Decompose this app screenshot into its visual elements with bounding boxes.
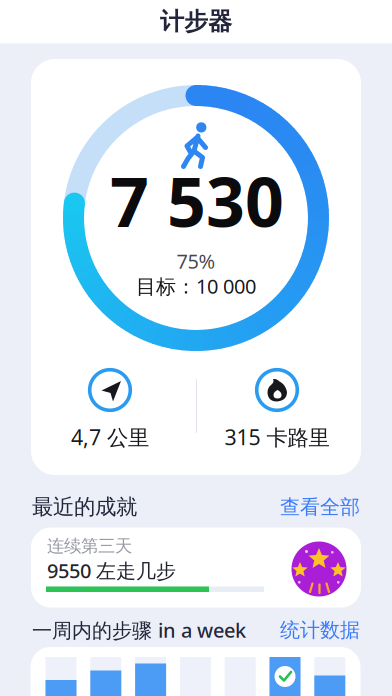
staticText: 9550 左走几步: [47, 557, 176, 584]
staticText: 4,7 公里: [71, 423, 149, 451]
staticText: 75%: [176, 248, 215, 274]
staticText: 7 530: [110, 155, 284, 246]
button[interactable]: 连续第三天: [31, 527, 361, 607]
staticText: 查看全部: [280, 495, 360, 519]
staticText: 统计数据: [280, 618, 360, 642]
button[interactable]: 查看全部: [280, 495, 360, 519]
staticText: 目标：10 000: [136, 273, 256, 299]
staticText: 计步器: [160, 7, 232, 36]
staticText: 连续第三天: [47, 535, 132, 557]
staticText: 315 卡路里: [224, 423, 329, 451]
staticText: 最近的成就: [32, 494, 137, 520]
button[interactable]: 统计数据: [280, 618, 360, 642]
staticText: 一周内的步骤 in a week: [32, 617, 246, 643]
